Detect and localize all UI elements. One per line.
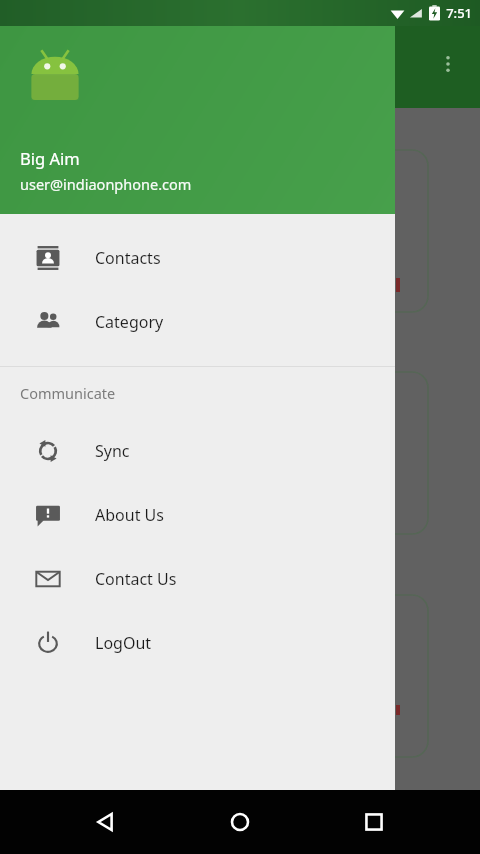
button[interactable]: Contact Us bbox=[0, 547, 395, 611]
staticText: Communicate bbox=[20, 383, 116, 403]
staticText: Category bbox=[95, 311, 164, 333]
button[interactable]: Sync bbox=[0, 419, 395, 483]
staticText: Contact Us bbox=[95, 568, 177, 590]
staticText: user@indiaonphone.com bbox=[20, 174, 192, 194]
button[interactable]: Contacts bbox=[0, 226, 395, 290]
button[interactable]: Big Aim bbox=[0, 26, 395, 214]
button[interactable]: About Us bbox=[0, 483, 395, 547]
button[interactable]: LogOut bbox=[0, 611, 395, 675]
staticText: Big Aim bbox=[20, 147, 80, 169]
button[interactable]: Recent apps bbox=[346, 794, 402, 850]
staticText: Sync bbox=[95, 440, 130, 462]
staticText: 7:51 bbox=[446, 4, 472, 22]
button[interactable]: Back bbox=[78, 794, 134, 850]
button[interactable]: Category bbox=[0, 290, 395, 354]
button[interactable]: Home bbox=[212, 794, 268, 850]
staticText: Contacts bbox=[95, 247, 161, 269]
staticText: LogOut bbox=[95, 632, 152, 654]
staticText: About Us bbox=[95, 504, 164, 526]
button[interactable]: More options bbox=[424, 40, 472, 88]
